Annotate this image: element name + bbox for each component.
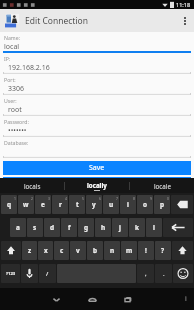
button[interactable]: a (10, 218, 26, 237)
staticText: d (50, 223, 55, 232)
button[interactable]: s (27, 218, 43, 237)
staticText: i (185, 294, 187, 304)
button[interactable]: t (69, 195, 85, 214)
button[interactable]: g (78, 218, 94, 237)
button[interactable]: e (35, 195, 51, 214)
button[interactable]: Save (3, 161, 191, 175)
staticText: Password: (4, 118, 29, 125)
staticText: k (135, 223, 139, 232)
staticText: r (59, 200, 62, 209)
button[interactable]: q (1, 195, 17, 214)
staticText: , (145, 270, 147, 278)
button[interactable]: d (44, 218, 60, 237)
button[interactable]: 3306 (3, 84, 191, 93)
button[interactable]: ••••••• (3, 126, 191, 135)
button[interactable]: root (3, 105, 191, 114)
button[interactable]: locally (65, 178, 129, 193)
button[interactable]: z (22, 241, 37, 260)
staticText: Save (89, 163, 105, 173)
button[interactable]: / (39, 264, 56, 283)
staticText: 8 (133, 196, 135, 201)
button[interactable]: r (52, 195, 68, 214)
staticText: 1 (14, 196, 16, 201)
staticText: 0 (167, 196, 169, 201)
button[interactable]: p (154, 195, 170, 214)
button[interactable]: n (104, 241, 120, 260)
staticText: 3 (48, 196, 50, 201)
staticText: y (92, 200, 96, 209)
button[interactable]: App icon, navigate up (4, 12, 21, 29)
button[interactable]: y (86, 195, 102, 214)
staticText: IP: (4, 55, 11, 62)
button[interactable]: Enter (163, 218, 193, 237)
button[interactable]: Home (74, 288, 110, 310)
button[interactable]: Hide keyboard (38, 288, 74, 310)
button[interactable]: ? (155, 241, 171, 260)
button[interactable]: l (146, 218, 162, 237)
button[interactable]: Keyboard info (178, 288, 194, 310)
staticText: n (110, 246, 115, 255)
button[interactable]: v (70, 241, 86, 260)
staticText: s (33, 223, 37, 232)
staticText: q (7, 200, 12, 209)
button[interactable]: 192.168.2.16 (3, 63, 191, 72)
staticText: 2 (31, 196, 33, 201)
button[interactable]: j (112, 218, 128, 237)
staticText: g (84, 223, 89, 232)
staticText: 4 (65, 196, 67, 201)
button[interactable]: locals (0, 178, 64, 193)
button[interactable]: ! (138, 241, 154, 260)
staticText: u (109, 200, 114, 209)
staticText: z (28, 246, 32, 255)
button[interactable]: Backspace (171, 195, 193, 214)
staticText: 7 (116, 196, 118, 201)
button[interactable]: Voice input (21, 264, 38, 283)
button[interactable]: Emoji (173, 264, 193, 283)
staticText: w (23, 200, 29, 209)
staticText: locally (87, 181, 107, 189)
staticText: c (60, 246, 64, 255)
staticText: l (153, 223, 155, 232)
staticText: Edit Connection (25, 15, 88, 27)
staticText: Name: (4, 34, 21, 41)
button[interactable]: o (137, 195, 153, 214)
button[interactable]: Shift (172, 241, 193, 260)
button[interactable]: locale (130, 178, 194, 193)
button[interactable]: x (38, 241, 53, 260)
staticText: t (76, 200, 79, 209)
button[interactable]: f (61, 218, 77, 237)
staticText: locals (24, 182, 41, 190)
button[interactable]: , (137, 264, 154, 283)
button[interactable]: More options (176, 9, 194, 32)
button[interactable]: b (87, 241, 103, 260)
staticText: locale (154, 182, 171, 190)
staticText: p (160, 200, 165, 209)
staticText: ••••••• (8, 126, 27, 135)
button[interactable]: c (54, 241, 69, 260)
staticText: 3306 (8, 84, 25, 93)
staticText: Port: (4, 76, 16, 83)
button[interactable]: u (103, 195, 119, 214)
staticText: v (76, 246, 80, 255)
staticText: ! (145, 246, 147, 255)
staticText: i (127, 200, 129, 209)
button[interactable]: i (120, 195, 136, 214)
staticText: 192.168.2.16 (8, 63, 50, 72)
button[interactable]: k (129, 218, 145, 237)
staticText: e (41, 200, 45, 209)
button[interactable]: w (18, 195, 34, 214)
button[interactable]: m (121, 241, 137, 260)
staticText: j (119, 223, 121, 232)
button[interactable]: Recents (110, 288, 146, 310)
button[interactable]: local (3, 42, 191, 51)
button[interactable]: Shift (1, 241, 21, 260)
staticText: m (126, 246, 133, 255)
button[interactable]: ?123 (1, 264, 20, 283)
button[interactable]: h (95, 218, 111, 237)
button[interactable]: . (155, 264, 172, 283)
staticText: 5 (82, 196, 84, 201)
